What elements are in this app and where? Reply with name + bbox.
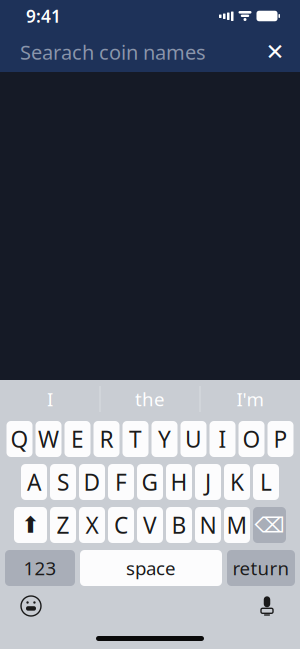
staticText: return — [232, 556, 289, 580]
staticText: P — [273, 424, 287, 454]
button[interactable]: Y — [151, 421, 177, 457]
staticText: K — [230, 467, 244, 497]
button[interactable]: I — [0, 380, 99, 418]
staticText: H — [170, 467, 187, 497]
staticText: R — [99, 424, 113, 454]
staticText: M — [226, 510, 247, 540]
button[interactable]: return — [227, 550, 295, 586]
staticText: X — [85, 510, 98, 540]
staticText: T — [129, 424, 142, 454]
button[interactable]: I'm — [200, 380, 299, 418]
button[interactable]: C — [108, 507, 134, 543]
staticText: ⬆ — [21, 512, 40, 538]
button[interactable]: I — [209, 421, 235, 457]
staticText: I — [218, 424, 226, 454]
staticText: V — [143, 510, 157, 540]
button[interactable]: S — [50, 464, 76, 500]
staticText: ⌫ — [254, 513, 284, 537]
button[interactable]: Shift — [14, 507, 47, 543]
button[interactable]: 123 — [5, 550, 75, 586]
button[interactable]: J — [195, 464, 221, 500]
button[interactable]: W — [35, 421, 61, 457]
button[interactable]: D — [79, 464, 105, 500]
staticText: E — [71, 424, 84, 454]
staticText: I — [47, 387, 53, 411]
staticText: O — [242, 424, 260, 454]
button[interactable]: X — [79, 507, 105, 543]
button[interactable]: U — [180, 421, 206, 457]
staticText: A — [27, 467, 41, 497]
staticText: G — [141, 467, 158, 497]
staticText: C — [114, 510, 128, 540]
button[interactable]: Delete — [253, 507, 286, 543]
button[interactable]: B — [166, 507, 192, 543]
button[interactable]: R — [93, 421, 119, 457]
staticText: U — [185, 424, 202, 454]
staticText: W — [38, 424, 59, 454]
button[interactable]: E — [64, 421, 90, 457]
staticText: Q — [10, 424, 28, 454]
staticText: S — [57, 467, 69, 497]
button[interactable]: Emoji keyboard — [12, 591, 50, 621]
staticText: Searach coin names — [20, 39, 206, 65]
staticText: ✕ — [265, 39, 284, 65]
button[interactable]: the — [100, 380, 199, 418]
staticText: 123 — [23, 556, 56, 580]
staticText: the — [135, 387, 165, 411]
staticText: F — [115, 467, 127, 497]
button[interactable]: space — [80, 550, 222, 586]
button[interactable]: H — [166, 464, 192, 500]
staticText: J — [205, 467, 211, 497]
button[interactable]: P — [267, 421, 293, 457]
staticText: L — [260, 467, 272, 497]
button[interactable]: Z — [50, 507, 76, 543]
button[interactable]: N — [195, 507, 221, 543]
staticText: Y — [158, 424, 171, 454]
staticText: Z — [56, 510, 69, 540]
button[interactable]: T — [122, 421, 148, 457]
staticText: N — [199, 510, 216, 540]
staticText: D — [83, 467, 100, 497]
button[interactable]: F — [108, 464, 134, 500]
staticText: 9:41 — [26, 4, 61, 27]
button[interactable]: Clear search — [258, 35, 292, 69]
staticText: I'm — [236, 387, 263, 411]
button[interactable]: L — [253, 464, 279, 500]
button[interactable]: K — [224, 464, 250, 500]
button[interactable]: Dictation — [248, 591, 286, 621]
button[interactable]: M — [224, 507, 250, 543]
button[interactable]: Q — [6, 421, 32, 457]
staticText: B — [171, 510, 186, 540]
button[interactable]: G — [137, 464, 163, 500]
button[interactable]: A — [21, 464, 47, 500]
button[interactable]: V — [137, 507, 163, 543]
button[interactable]: O — [238, 421, 264, 457]
staticText: space — [126, 556, 176, 580]
